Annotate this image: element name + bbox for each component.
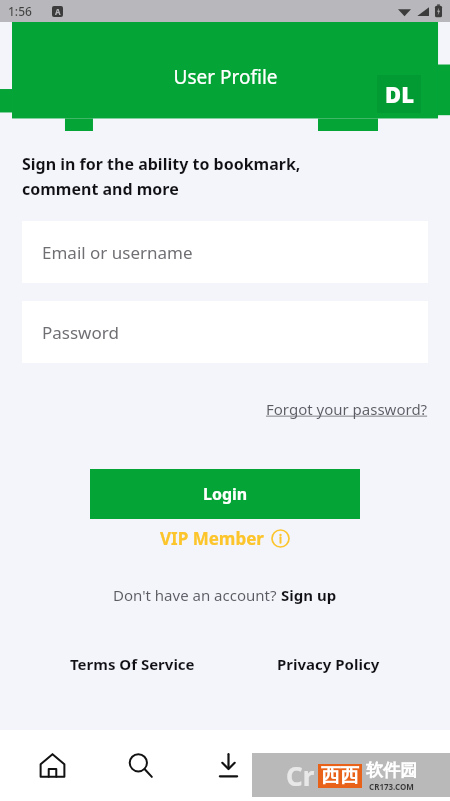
staticText: Terms Of Service (70, 654, 195, 674)
staticText: Sign up (281, 585, 337, 605)
staticText: VIP Member (160, 527, 264, 550)
staticText: CR173.COM (369, 781, 414, 792)
button[interactable]: DL logo (377, 75, 421, 113)
staticText: Forgot your password? (266, 399, 428, 419)
staticText: Sign in for the ability to bookmark, com… (22, 153, 301, 199)
button[interactable]: Login (90, 469, 360, 519)
staticText: Cr (286, 758, 315, 793)
staticText: 西西 (321, 764, 359, 788)
button[interactable]: Email or username (22, 221, 428, 283)
staticText: A (55, 6, 61, 17)
button[interactable]: Downloads (184, 730, 272, 801)
staticText: Login (203, 483, 248, 505)
button[interactable]: Privacy Policy (265, 646, 392, 682)
staticText: DL (385, 79, 414, 109)
staticText: User Profile (173, 64, 278, 90)
button[interactable]: Password (22, 301, 428, 363)
button[interactable]: VIP Member (152, 524, 298, 553)
button[interactable]: Home (8, 730, 96, 801)
staticText: 1:56 (8, 3, 32, 19)
staticText: 软件园 (366, 760, 417, 781)
staticText: Email or username (42, 241, 193, 264)
button[interactable]: Search (96, 730, 184, 801)
button[interactable]: Don't have an account? (105, 581, 345, 609)
staticText: Password (42, 321, 119, 344)
button[interactable]: Forgot your password? (244, 393, 450, 425)
button[interactable]: Terms Of Service (58, 646, 207, 682)
staticText: Privacy Policy (277, 654, 380, 674)
staticText: Don't have an account? (113, 585, 281, 605)
